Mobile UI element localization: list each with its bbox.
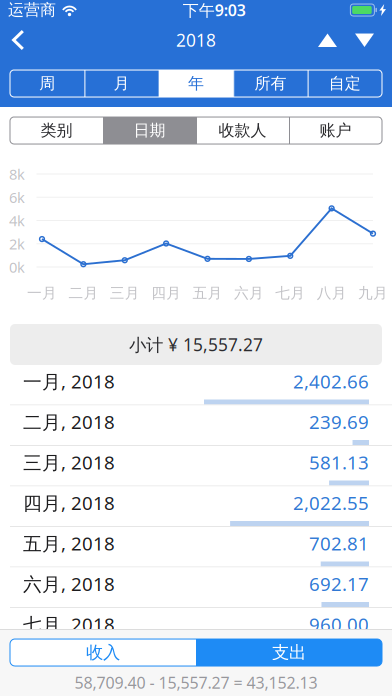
button[interactable]: Next period (346, 17, 383, 63)
button[interactable]: 五月, 2018 (0, 527, 392, 566)
staticText: 小计 ¥ 15,557.27 (129, 333, 263, 356)
staticText: 58,709.40 - 15,557.27 = 43,152.13 (74, 672, 317, 693)
staticText: 一月, 2018 (23, 369, 115, 394)
button[interactable]: 收款人 (196, 117, 289, 144)
button[interactable]: 收入 (10, 639, 196, 666)
button[interactable]: 支出 (196, 639, 382, 666)
staticText: 三月 (110, 284, 140, 302)
staticText: 2,022.55 (293, 490, 369, 515)
staticText: 九月 (358, 284, 388, 302)
staticText: 七月 (275, 284, 305, 302)
button[interactable]: 月 (84, 70, 159, 97)
staticText: 五月 (192, 284, 222, 302)
button[interactable]: Previous period (309, 17, 346, 63)
staticText: 692.17 (309, 571, 369, 596)
staticText: 702.81 (309, 531, 369, 556)
button[interactable]: 类别 (10, 117, 103, 144)
staticText: 八月 (317, 284, 347, 302)
staticText: 二月 (68, 284, 98, 302)
staticText: 239.69 (309, 409, 369, 434)
staticText: 六月, 2018 (23, 571, 115, 596)
staticText: 一月 (27, 284, 57, 302)
staticText: 五月, 2018 (23, 531, 115, 556)
staticText: 四月, 2018 (23, 490, 115, 515)
staticText: 运营商 (8, 0, 56, 20)
button[interactable]: 所有 (233, 70, 308, 97)
staticText: 六月 (234, 284, 264, 302)
button[interactable]: 七月, 2018 (0, 608, 392, 647)
staticText: 8k (9, 164, 25, 184)
button[interactable]: 二月, 2018 (0, 405, 392, 445)
button[interactable]: 账户 (289, 117, 382, 144)
staticText: 2018 (176, 28, 216, 51)
button[interactable]: 自定 (308, 70, 382, 97)
staticText: 日期 (133, 121, 165, 140)
staticText: 4k (9, 211, 25, 230)
button[interactable]: 一月, 2018 (0, 365, 392, 404)
staticText: 类别 (40, 121, 72, 140)
button[interactable]: 周 (10, 70, 84, 97)
staticText: 二月, 2018 (23, 409, 115, 434)
staticText: 581.13 (309, 450, 369, 475)
staticText: 支出 (272, 642, 306, 663)
staticText: 年 (188, 74, 204, 93)
staticText: 所有 (254, 74, 286, 93)
staticText: 自定 (329, 74, 361, 93)
staticText: 2,402.66 (293, 369, 369, 394)
button[interactable]: 日期 (103, 117, 196, 144)
staticText: 960.00 (309, 612, 369, 637)
staticText: 三月, 2018 (23, 450, 115, 475)
button[interactable]: 六月, 2018 (0, 567, 392, 607)
button[interactable]: Back (0, 17, 38, 63)
button[interactable]: 四月, 2018 (0, 486, 392, 526)
staticText: 0k (9, 257, 25, 277)
staticText: 四月 (151, 284, 181, 302)
button[interactable]: 年 (159, 70, 233, 97)
staticText: 收款人 (218, 121, 266, 140)
staticText: 七月, 2018 (23, 612, 115, 637)
staticText: 周 (39, 74, 55, 93)
staticText: 收入 (86, 642, 120, 663)
staticText: 6k (9, 187, 25, 207)
staticText: 月 (114, 74, 130, 93)
staticText: 账户 (319, 121, 351, 140)
button[interactable]: 三月, 2018 (0, 446, 392, 485)
staticText: 2k (9, 234, 25, 253)
staticText: 下午9:03 (183, 0, 246, 21)
